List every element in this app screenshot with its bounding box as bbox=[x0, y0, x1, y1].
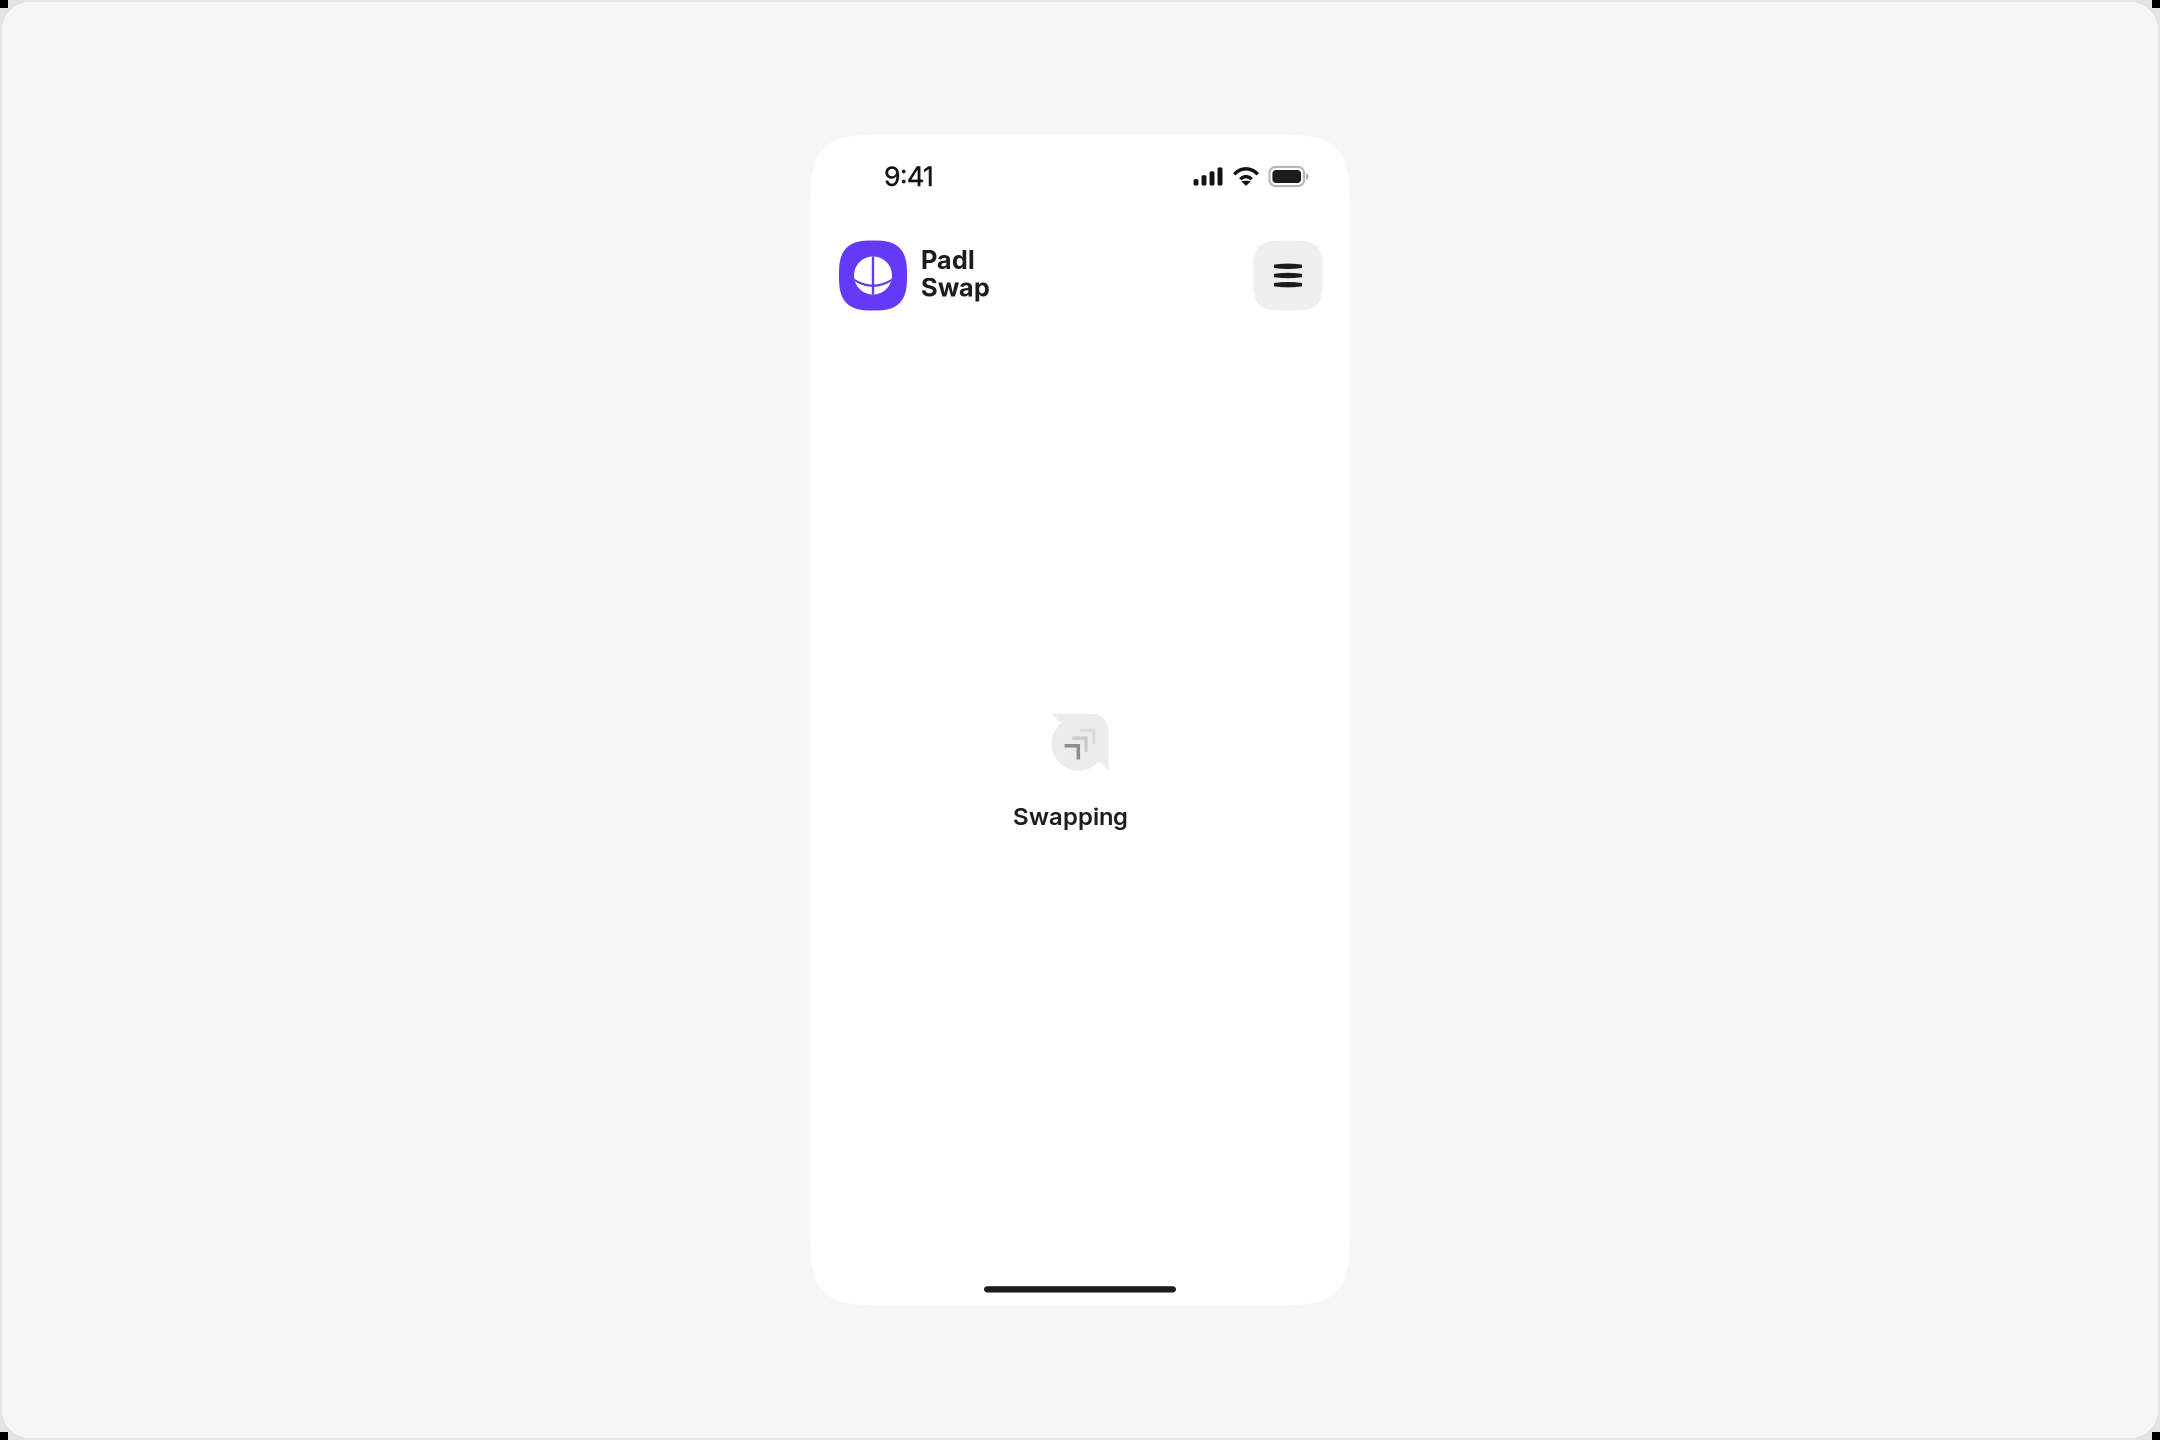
button[interactable]: Padl bbox=[839, 240, 990, 310]
button[interactable]: Menu bbox=[1253, 240, 1323, 310]
staticText: Padl bbox=[921, 244, 975, 275]
staticText: Swapping bbox=[1013, 802, 1128, 831]
staticText: 9:41 bbox=[884, 160, 934, 193]
staticText: Swap bbox=[921, 272, 990, 303]
